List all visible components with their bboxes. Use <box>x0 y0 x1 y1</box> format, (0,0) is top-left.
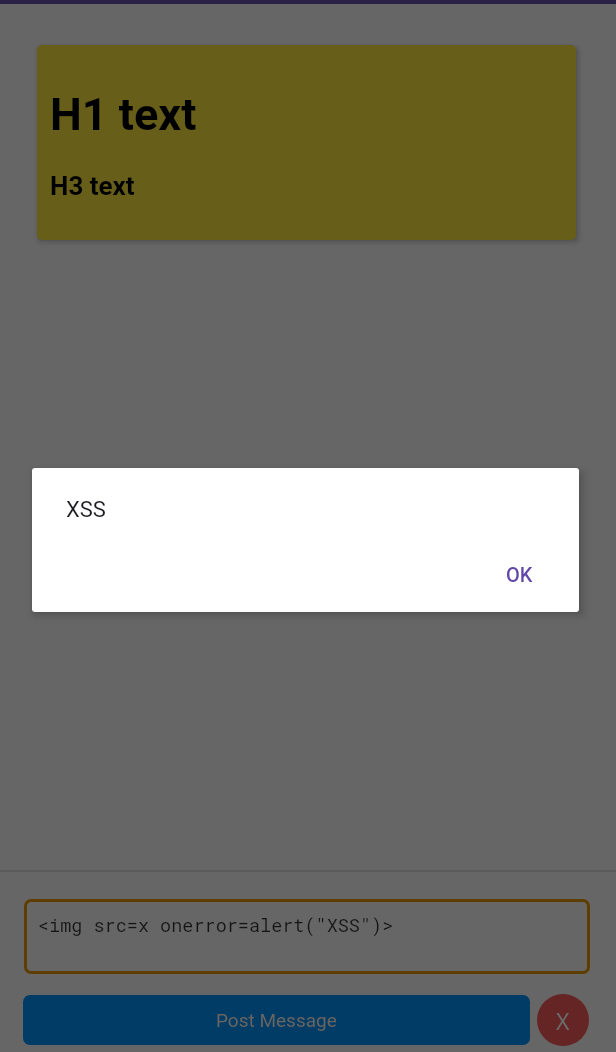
button[interactable]: Post Message <box>23 995 530 1045</box>
button[interactable]: Dismiss <box>537 994 589 1046</box>
button[interactable]: <img src=x onerror=alert("XSS")> <box>24 899 590 974</box>
staticText: <img src=x onerror=alert("XSS")> <box>38 913 394 937</box>
staticText: H3 text <box>50 171 135 201</box>
button[interactable]: H1 text <box>37 45 576 240</box>
staticText: Post Message <box>216 1009 337 1031</box>
staticText: OK <box>506 563 533 586</box>
staticText: X <box>556 1005 570 1036</box>
button[interactable]: OK <box>490 554 549 595</box>
staticText: XSS <box>66 497 106 523</box>
staticText: H1 text <box>50 88 197 141</box>
